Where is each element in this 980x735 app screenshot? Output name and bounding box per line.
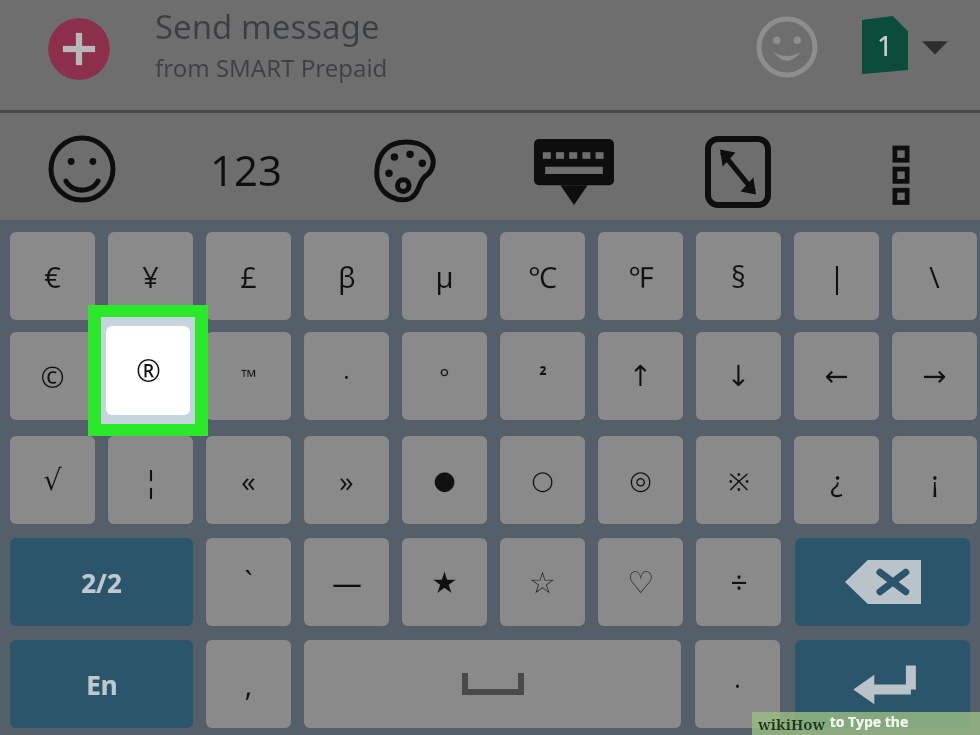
button[interactable]: Select SIM (918, 30, 952, 64)
button[interactable]: → (892, 332, 977, 420)
staticText: 2/2 (81, 565, 122, 600)
staticText: ← (824, 359, 849, 393)
button[interactable]: · (695, 640, 780, 728)
button[interactable]: En (10, 640, 193, 728)
staticText: ™ (241, 363, 257, 390)
staticText: ● (433, 465, 456, 495)
staticText: ¡ (931, 461, 939, 500)
button[interactable]: ` (206, 538, 291, 626)
staticText: ♡ (627, 565, 654, 600)
staticText: µ (435, 257, 454, 296)
button[interactable]: ® (106, 326, 190, 415)
staticText: ★ (431, 565, 458, 600)
staticText: © (40, 357, 65, 396)
staticText: ` (244, 562, 253, 603)
button[interactable]: ÷ (696, 538, 781, 626)
button[interactable]: Themes (372, 138, 440, 206)
button[interactable]: Emoticons (48, 135, 116, 203)
button[interactable]: £ (206, 232, 291, 320)
staticText: · (734, 667, 741, 702)
button[interactable]: ℉ (598, 232, 683, 320)
staticText: | (829, 257, 845, 296)
button[interactable]: 123 (196, 141, 296, 195)
staticText: ® (136, 350, 161, 391)
button[interactable]: ↓ (696, 332, 781, 420)
staticText: ÷ (730, 562, 748, 603)
button[interactable]: ℃ (500, 232, 585, 320)
button[interactable]: | (794, 232, 879, 320)
staticText: ℃ (528, 257, 557, 296)
staticText: ○ (531, 465, 554, 495)
staticText: ↓ (726, 359, 751, 393)
staticText: to Type the Trademark Symbol (826, 712, 980, 735)
button[interactable]: Emoji (756, 16, 818, 78)
staticText: ↑ (628, 359, 653, 393)
button[interactable]: ★ (402, 538, 487, 626)
button[interactable]: \ (892, 232, 977, 320)
staticText: « (241, 461, 256, 500)
staticText: ¥ (142, 257, 159, 296)
staticText: √ (43, 463, 62, 497)
button[interactable]: ™ (206, 332, 291, 420)
staticText: 1 (877, 26, 894, 64)
button[interactable]: Resize keyboard (706, 137, 770, 207)
staticText: , (244, 664, 253, 705)
staticText: ◎ (629, 465, 652, 495)
staticText: € (44, 257, 61, 296)
button[interactable]: µ (402, 232, 487, 320)
staticText: ¿ (830, 461, 843, 500)
staticText: ² (539, 363, 547, 390)
button[interactable]: 2/2 (10, 538, 193, 626)
staticText: — (332, 562, 362, 603)
staticText: ° (439, 360, 450, 393)
button[interactable]: — (304, 538, 389, 626)
staticText: En (86, 667, 118, 702)
staticText: £ (240, 257, 257, 296)
button[interactable]: « (206, 436, 291, 524)
staticText: β (338, 257, 356, 296)
staticText: from SMART Prepaid (155, 51, 388, 84)
button[interactable]: ← (794, 332, 879, 420)
button[interactable]: Space (304, 640, 681, 728)
staticText: 123 (210, 141, 283, 195)
button[interactable]: ¿ (794, 436, 879, 524)
button[interactable]: β (304, 232, 389, 320)
button[interactable]: · (304, 332, 389, 420)
staticText: » (339, 461, 354, 500)
button[interactable]: ¡ (892, 436, 977, 524)
button[interactable]: ¥ (108, 232, 193, 320)
button[interactable]: SIM 1 (862, 16, 908, 74)
staticText: wikiHow (758, 714, 826, 734)
button[interactable]: Backspace (795, 538, 970, 626)
button[interactable]: ☆ (500, 538, 585, 626)
button[interactable]: Hide keyboard (534, 139, 614, 205)
button[interactable]: » (304, 436, 389, 524)
staticText: → (922, 359, 947, 393)
staticText: § (731, 257, 746, 296)
button[interactable]: ※ (696, 436, 781, 524)
button[interactable]: Enter (795, 640, 970, 728)
button[interactable]: More options (876, 139, 926, 205)
button[interactable]: ² (500, 332, 585, 420)
button[interactable]: ● (402, 436, 487, 524)
button[interactable]: , (206, 640, 291, 728)
staticText: ℉ (628, 257, 654, 296)
staticText: ※ (728, 463, 750, 498)
button[interactable]: ◎ (598, 436, 683, 524)
button[interactable]: § (696, 232, 781, 320)
button[interactable]: ° (402, 332, 487, 420)
staticText: · (343, 360, 350, 393)
staticText: ☆ (529, 565, 556, 600)
button[interactable]: ↑ (598, 332, 683, 420)
button[interactable]: © (10, 332, 95, 420)
button[interactable]: ○ (500, 436, 585, 524)
staticText: Send message (155, 4, 380, 49)
button[interactable]: Add attachment (48, 18, 110, 80)
button[interactable]: € (10, 232, 95, 320)
button[interactable]: ♡ (598, 538, 683, 626)
button[interactable]: √ (10, 436, 95, 524)
staticText: ¦ (143, 461, 159, 500)
staticText: \ (929, 257, 940, 296)
button[interactable]: ¦ (108, 436, 193, 524)
